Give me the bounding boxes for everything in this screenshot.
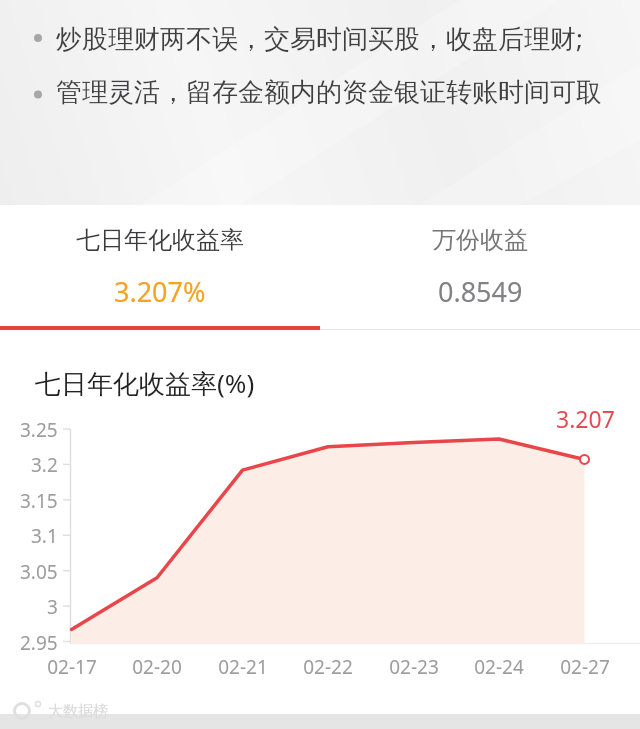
staticText: 3.207 — [556, 403, 615, 429]
staticText: 大数据榜 — [48, 702, 108, 721]
staticText: 七日年化收益率 — [76, 225, 244, 255]
staticText: 万份收益 — [432, 225, 528, 255]
staticText: 3.25 — [20, 417, 58, 441]
staticText: 02-27 — [560, 654, 610, 678]
staticText: 3.2 — [31, 452, 58, 476]
staticText: 3.05 — [20, 559, 58, 583]
staticText: 02-23 — [389, 654, 439, 678]
staticText: 02-20 — [132, 654, 182, 678]
staticText: 02-17 — [47, 654, 97, 678]
staticText: 管理灵活，留存金额内的资金银证转账时间可取 — [56, 76, 602, 109]
staticText: 02-22 — [303, 654, 353, 678]
staticText: 七日年化收益率(%) — [35, 365, 255, 401]
staticText: 0.8549 — [438, 273, 523, 310]
staticText: 02-24 — [474, 654, 524, 678]
staticText: 炒股理财两不误，交易时间买股，收盘后理财; — [56, 20, 583, 56]
staticText: 3.207% — [114, 273, 206, 310]
staticText: 3.15 — [20, 488, 58, 512]
staticText: 3.1 — [31, 523, 58, 547]
staticText: 02-21 — [218, 654, 268, 678]
button[interactable]: 万份收益 — [320, 205, 640, 330]
staticText: 3 — [47, 594, 58, 618]
staticText: 2.95 — [20, 630, 58, 654]
button[interactable]: 七日年化收益率 — [0, 205, 320, 330]
